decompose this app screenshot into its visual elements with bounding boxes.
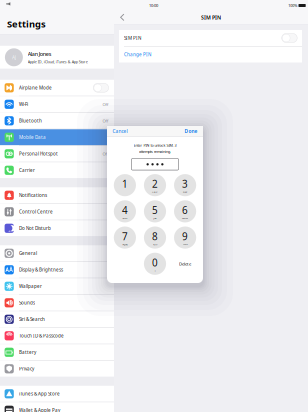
staticText: 5 [152,203,158,217]
staticText: 1 [122,177,128,191]
staticText: AJ [12,54,16,60]
staticText: 8 [152,230,158,243]
button[interactable]: Bluetooth [0,113,114,129]
staticText: SIM PIN [201,14,221,21]
staticText: General [19,250,37,256]
button[interactable]: Mobile Data [0,129,114,145]
staticText: Privacy [19,366,34,372]
staticText: 100% [288,3,297,8]
staticText: 2 [152,177,158,191]
staticText: Enter PIN to unlock SIM. 3 [133,143,176,148]
staticText: Apple ID, iCloud, iTunes & App Store [28,59,88,64]
button[interactable]: Battery [0,344,114,360]
staticText: Personal Hotspot [19,151,58,157]
button[interactable]: 8 [144,226,166,249]
staticText: Notifications [19,192,47,198]
button[interactable]: 9 [174,226,196,249]
staticText: Off [103,118,109,124]
staticText: 9 [182,230,188,243]
button[interactable]: Done [179,126,203,136]
staticText: iTunes & App Store [19,391,60,397]
button[interactable]: 4 [114,200,136,222]
button[interactable]: 2 [144,174,166,196]
button[interactable]: Change PIN [119,46,302,62]
button[interactable]: 3 [174,174,196,196]
staticText: Alan Jones [28,50,52,57]
staticText: Touch ID & Passcode [19,333,64,339]
button[interactable]: 6 [174,200,196,222]
staticText: Airplane Mode [19,85,52,91]
staticText: Off [103,151,109,157]
button[interactable]: 1 [114,174,136,196]
staticText: 0 [152,256,158,269]
button[interactable]: Notifications [0,187,114,203]
button[interactable]: Control Centre [0,204,114,220]
staticText: Done [184,128,197,134]
staticText: Mobile Data [19,134,46,140]
staticText: DEF [183,190,187,194]
staticText: Carrier [19,167,35,173]
staticText: Battery [19,349,36,355]
button[interactable]: General [0,245,114,261]
button[interactable]: Back [116,10,128,24]
button[interactable]: Do Not Disturb [0,220,114,236]
staticText: 7 [122,230,128,243]
staticText: Bluetooth [19,118,42,124]
staticText: Control Centre [19,209,53,215]
staticText: Change PIN [124,51,151,58]
staticText: TUV [153,243,157,246]
button[interactable]: AJ [0,46,114,69]
staticText: 6 [182,203,188,217]
button[interactable]: Wallet & Apple Pay [0,402,114,412]
staticText: Display & Brightness [19,267,63,273]
button[interactable]: Cancel [107,126,132,136]
button[interactable]: Sounds [0,295,114,311]
button[interactable]: 5 [144,200,166,222]
staticText: Sounds [19,300,35,306]
button[interactable]: iTunes & App Store [0,386,114,402]
staticText: JKL [153,216,156,220]
button[interactable]: Wi-Fi [0,96,114,112]
staticText: Off [103,101,109,107]
staticText: Wallpaper [19,283,42,289]
staticText: 3 [182,177,188,191]
button[interactable]: 0 [144,253,166,275]
staticText: SIM PIN [124,35,141,41]
staticText: ABC [152,190,158,194]
button[interactable]: Wallpaper [0,278,114,294]
button[interactable]: 7 [114,226,136,249]
staticText: attempts remaining. [139,149,171,154]
staticText: 4 [122,203,128,217]
staticText: 10:00 [149,3,158,8]
button[interactable]: Personal Hotspot [0,146,114,162]
button[interactable]: Delete [174,253,196,275]
button[interactable]: Display & Brightness [0,262,114,278]
button[interactable]: Privacy [0,361,114,377]
staticText: Do Not Disturb [19,225,51,231]
button[interactable]: Carrier [0,162,114,178]
staticText: Wi-Fi [19,101,28,107]
staticText: Settings [7,18,46,30]
staticText: + [154,269,155,272]
staticText: PQRS [122,243,127,246]
button[interactable]: Siri & Search [0,311,114,327]
staticText: GHI [122,216,127,220]
staticText: Wallet & Apple Pay [19,407,60,412]
staticText: WXYZ [183,243,188,246]
staticText: MNO [182,216,188,220]
staticText: Delete [179,261,191,267]
staticText: Siri & Search [19,316,45,322]
staticText: Cancel [112,128,127,134]
button[interactable]: Touch ID & Passcode [0,328,114,344]
button[interactable]: Airplane Mode [0,80,114,96]
